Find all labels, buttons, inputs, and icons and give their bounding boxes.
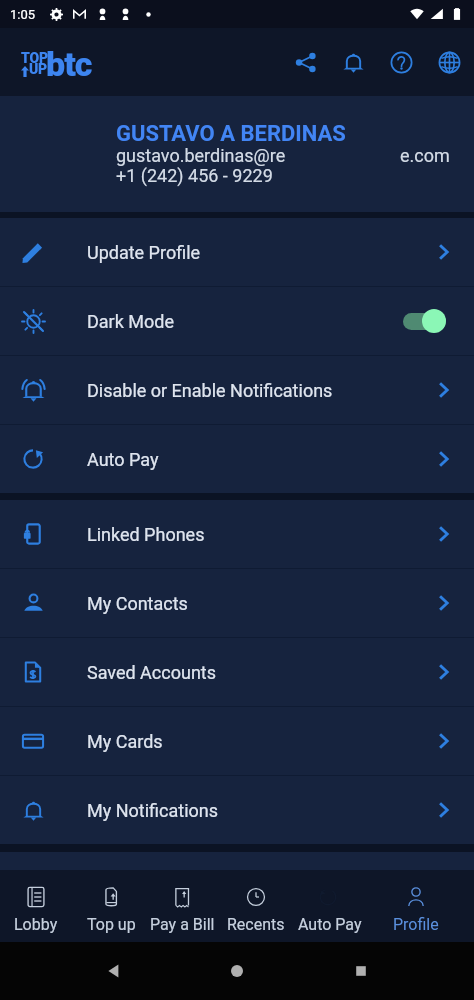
staticText: TOP	[21, 50, 48, 66]
staticText: Disable or Enable Notifications	[87, 380, 414, 401]
staticText: Auto Pay	[298, 915, 358, 934]
staticText: My Notifications	[87, 800, 414, 821]
button[interactable]: Disable or Enable Notifications	[0, 356, 474, 424]
button[interactable]: My Cards	[0, 707, 474, 775]
staticText: Dark Mode	[87, 311, 402, 332]
button[interactable]: Top up	[72, 870, 150, 942]
staticText: My Contacts	[87, 593, 414, 614]
staticText: Profile	[393, 915, 439, 934]
button[interactable]: Share	[293, 50, 317, 74]
staticText: +1 (242) 456 - 9229	[116, 165, 273, 186]
staticText: Pay a Bill	[150, 915, 214, 934]
staticText: e.com	[400, 145, 450, 166]
button[interactable]: Lobby	[0, 870, 72, 942]
button[interactable]: Auto Pay	[298, 870, 358, 942]
button[interactable]: Auto Pay	[0, 425, 474, 493]
button[interactable]: Help	[389, 50, 413, 74]
button[interactable]: Dark mode toggle	[402, 304, 462, 338]
button[interactable]: My Contacts	[0, 569, 474, 637]
button[interactable]: Saved Accounts	[0, 638, 474, 706]
staticText: UP	[29, 61, 48, 77]
button[interactable]: Linked Phones	[0, 500, 474, 568]
button[interactable]: Profile	[358, 870, 474, 942]
button[interactable]: Notifications	[341, 50, 365, 74]
staticText: My Cards	[87, 731, 414, 752]
staticText: GUSTAVO A BERDINAS	[116, 121, 346, 147]
staticText: Top up	[87, 915, 136, 934]
button[interactable]: Language	[437, 50, 461, 74]
button[interactable]: Update Profile	[0, 218, 474, 286]
staticText: Auto Pay	[87, 449, 414, 470]
staticText: Saved Accounts	[87, 662, 414, 683]
staticText: 1:05	[10, 7, 36, 22]
staticText: Update Profile	[87, 242, 414, 263]
button[interactable]: My Notifications	[0, 776, 474, 844]
button[interactable]: Dark Mode	[0, 287, 474, 355]
staticText: Linked Phones	[87, 524, 414, 545]
staticText: btc	[46, 44, 92, 84]
button[interactable]: Pay a Bill	[150, 870, 214, 942]
staticText: Recents	[227, 915, 285, 934]
button[interactable]: Recents	[214, 870, 298, 942]
staticText: Lobby	[14, 915, 58, 934]
staticText: gustavo.berdinas@real	[116, 145, 286, 166]
